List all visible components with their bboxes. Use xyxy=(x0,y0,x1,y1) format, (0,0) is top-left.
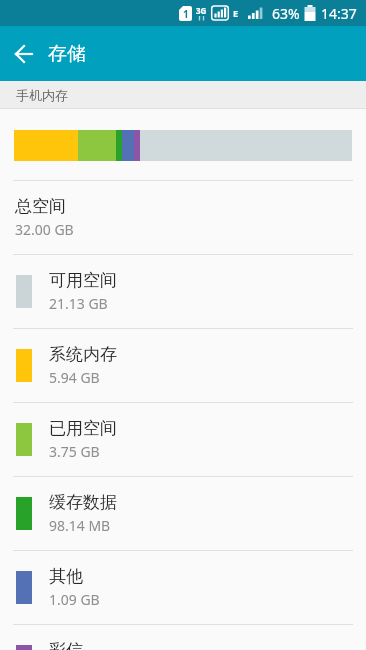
staticText: E xyxy=(233,7,239,19)
button[interactable]: 彩信 xyxy=(0,625,366,650)
button[interactable]: 已用空间 xyxy=(0,403,366,476)
staticText: 3.75 GB xyxy=(49,442,100,461)
staticText: 98.14 MB xyxy=(49,516,111,535)
staticText: 已用空间 xyxy=(49,418,117,439)
button[interactable]: 其他 xyxy=(0,551,366,624)
staticText: 14:37 xyxy=(321,4,357,23)
staticText: 32.00 GB xyxy=(15,220,74,239)
staticText: 系统内存 xyxy=(49,344,117,365)
staticText: 21.13 GB xyxy=(49,294,108,313)
button[interactable] xyxy=(0,26,48,81)
staticText: 可用空间 xyxy=(49,270,117,291)
staticText: 5.94 GB xyxy=(49,368,100,387)
button[interactable]: 系统内存 xyxy=(0,329,366,402)
staticText: 63% xyxy=(272,4,300,23)
staticText: 1.09 GB xyxy=(49,590,100,609)
staticText: 1 xyxy=(183,7,189,21)
button[interactable]: 总空间 xyxy=(0,181,366,254)
staticText: 手机内存 xyxy=(16,87,68,103)
staticText: 缓存数据 xyxy=(49,492,117,513)
button[interactable]: 缓存数据 xyxy=(0,477,366,550)
button[interactable]: 可用空间 xyxy=(0,255,366,328)
staticText: 总空间 xyxy=(15,196,66,217)
staticText: 其他 xyxy=(49,566,83,587)
staticText: 存储 xyxy=(48,42,86,66)
staticText: 3G xyxy=(196,5,207,16)
staticText: 彩信 xyxy=(49,640,83,650)
